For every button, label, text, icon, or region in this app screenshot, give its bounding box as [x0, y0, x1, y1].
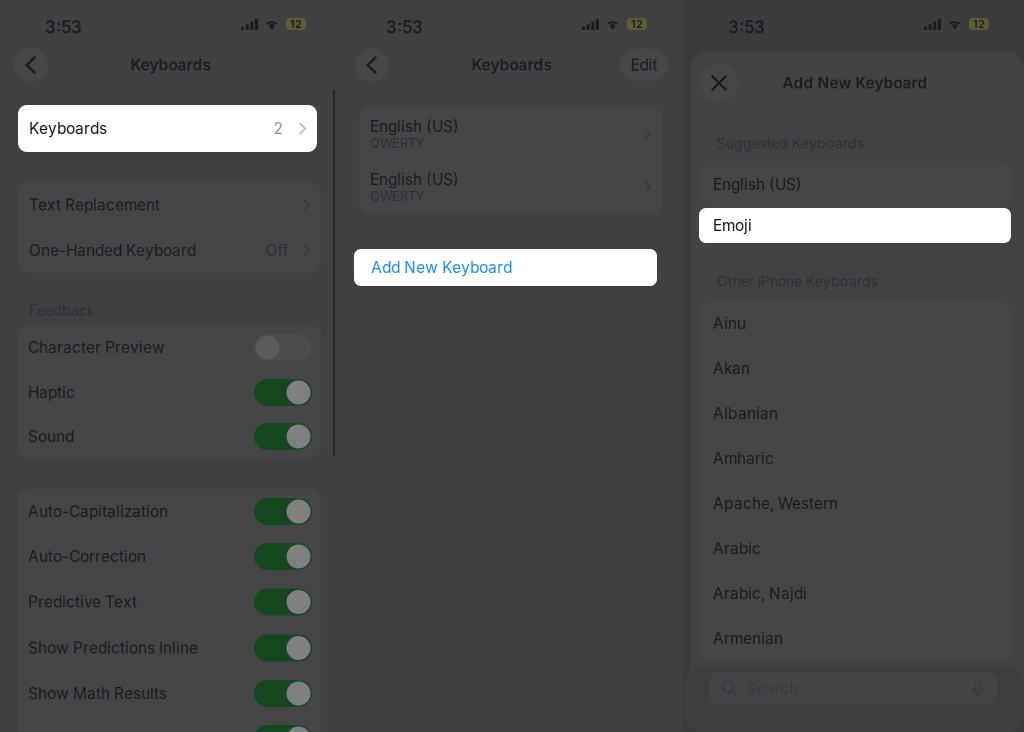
- button[interactable]: Armenian: [699, 616, 1011, 661]
- staticText: English (US): [713, 175, 802, 194]
- button[interactable]: Amharic: [699, 436, 1011, 481]
- staticText: Arabic, Najdi: [713, 584, 807, 603]
- button[interactable]: Add New Keyboard: [354, 249, 657, 286]
- staticText: English (US): [370, 117, 459, 136]
- button[interactable]: Edit: [620, 49, 668, 81]
- staticText: Albanian: [713, 404, 778, 423]
- staticText: Akan: [713, 359, 750, 378]
- staticText: Arabic: [713, 539, 761, 558]
- staticText: Character Preview: [28, 338, 165, 357]
- button[interactable]: Text Replacement: [18, 182, 321, 228]
- button[interactable]: English (US): [359, 107, 662, 160]
- button[interactable]: Arabic, Najdi: [699, 571, 1011, 616]
- button[interactable]: Ainu: [699, 301, 1011, 346]
- staticText: Sound: [28, 427, 74, 446]
- staticText: Auto-Capitalization: [28, 502, 168, 521]
- staticText: Emoji: [713, 216, 752, 235]
- button[interactable]: Keyboards: [18, 105, 317, 152]
- button[interactable]: Emoji: [699, 208, 1011, 243]
- staticText: Suggested Keyboards: [717, 135, 864, 152]
- button[interactable]: Arabic: [699, 526, 1011, 571]
- staticText: Armenian: [713, 629, 783, 648]
- button[interactable]: One-Handed Keyboard: [18, 228, 321, 273]
- staticText: Other iPhone Keyboards: [717, 273, 878, 290]
- staticText: Auto-Correction: [28, 547, 146, 566]
- staticText: Add New Keyboard: [371, 258, 512, 277]
- staticText: Keyboards: [130, 56, 210, 74]
- staticText: Amharic: [713, 449, 774, 468]
- staticText: Keyboards: [471, 56, 551, 74]
- staticText: 12: [290, 17, 302, 30]
- staticText: Feedback: [29, 302, 95, 319]
- staticText: 12: [631, 17, 643, 30]
- button[interactable]: Back: [355, 48, 389, 82]
- staticText: Show Predictions Inline: [28, 639, 198, 657]
- button[interactable]: English (US): [699, 162, 1011, 207]
- staticText: Predictive Text: [28, 593, 137, 611]
- staticText: Off: [265, 241, 288, 260]
- button[interactable]: Akan: [699, 346, 1011, 391]
- staticText: Haptic: [28, 383, 75, 402]
- staticText: One-Handed Keyboard: [29, 241, 196, 260]
- staticText: Edit: [630, 56, 657, 74]
- button[interactable]: English (US): [359, 160, 662, 213]
- staticText: Apache, Western: [713, 494, 838, 513]
- staticText: 3:53: [386, 17, 423, 37]
- staticText: QWERTY: [370, 189, 425, 204]
- staticText: QWERTY: [370, 136, 425, 151]
- staticText: Search: [746, 679, 798, 698]
- staticText: 2: [273, 119, 282, 138]
- staticText: Show Math Results: [28, 684, 167, 703]
- button[interactable]: Back: [14, 48, 48, 82]
- staticText: Ainu: [713, 314, 746, 333]
- staticText: Text Replacement: [29, 196, 160, 214]
- staticText: Add New Keyboard: [782, 74, 927, 92]
- staticText: 12: [973, 17, 985, 30]
- button[interactable]: Albanian: [699, 391, 1011, 436]
- staticText: 3:53: [45, 17, 82, 37]
- staticText: 3:53: [728, 17, 765, 37]
- staticText: English (US): [370, 170, 459, 189]
- button[interactable]: Close: [700, 64, 738, 102]
- button[interactable]: Apache, Western: [699, 481, 1011, 526]
- staticText: Keyboards: [29, 119, 107, 138]
